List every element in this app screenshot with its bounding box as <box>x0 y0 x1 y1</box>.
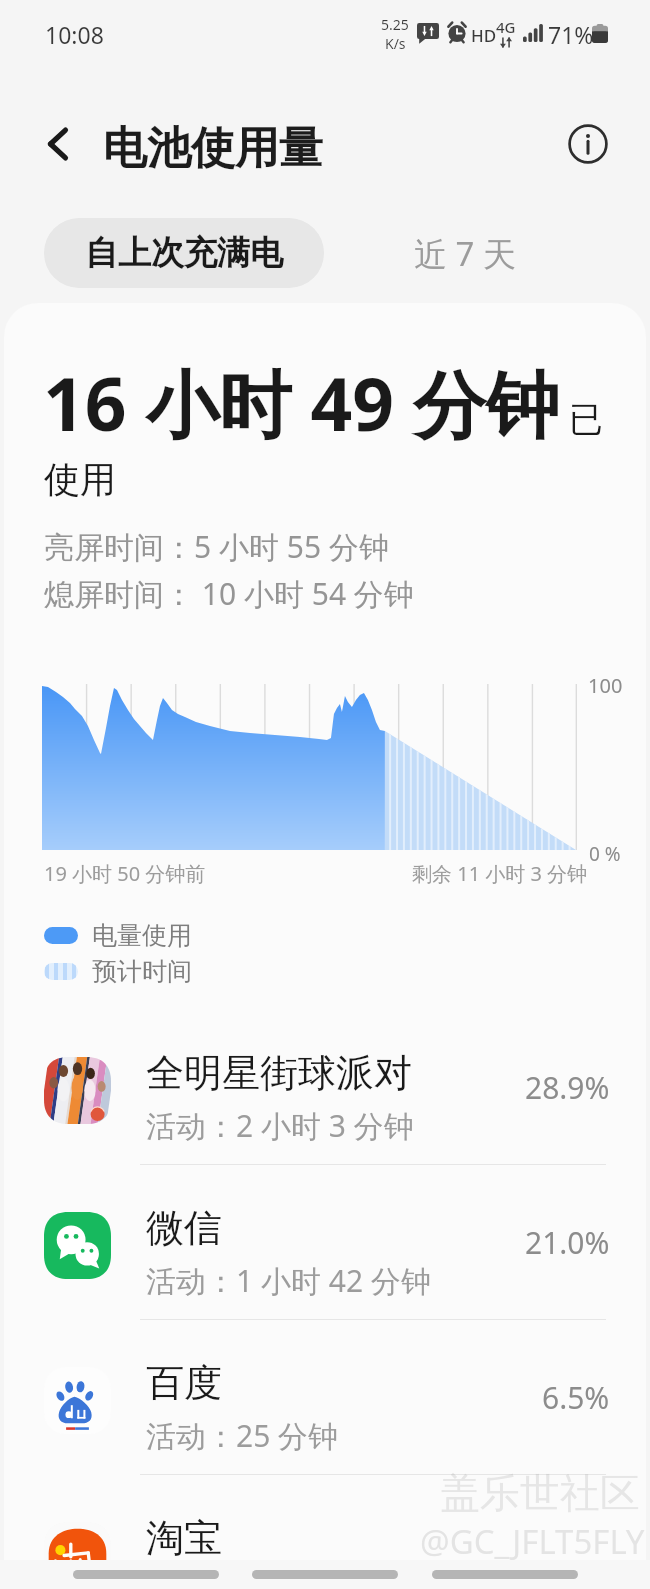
staticText: 活动：25 分钟 <box>146 1415 339 1456</box>
staticText: 10:08 <box>45 19 104 50</box>
button[interactable]: 近 7 天 <box>380 218 550 288</box>
staticText: 已 <box>569 398 603 441</box>
staticText: 近 7 天 <box>414 231 517 276</box>
staticText: 剩余 11 小时 3 分钟 <box>412 860 588 887</box>
staticText: 电池使用量 <box>103 121 323 176</box>
staticText: 淘宝 <box>146 1514 222 1562</box>
staticText: 预计时间 <box>92 956 192 987</box>
staticText: 5.25 <box>381 15 409 34</box>
button[interactable]: Information <box>558 114 618 174</box>
staticText: 百度 <box>146 1359 222 1407</box>
staticText: 21.0% <box>525 1222 610 1263</box>
button[interactable]: 微信 <box>4 1165 646 1320</box>
staticText: K/s <box>385 34 406 53</box>
staticText: HD <box>471 24 497 47</box>
button[interactable]: Back <box>26 112 90 176</box>
button[interactable]: Home <box>252 1570 398 1579</box>
staticText: 19 小时 50 分钟前 <box>44 860 206 887</box>
staticText: 0 % <box>589 841 621 867</box>
button[interactable]: Back <box>432 1570 578 1579</box>
staticText: 自上次充满电 <box>85 232 283 274</box>
staticText: 微信 <box>146 1204 222 1252</box>
button[interactable]: 自上次充满电 <box>44 218 324 288</box>
button[interactable]: 全明星街球派对 <box>4 1010 646 1165</box>
staticText: 16 小时 49 分钟 <box>43 353 559 453</box>
staticText: 71% <box>548 19 594 50</box>
staticText: @GC_JFLT5FLY <box>420 1519 645 1564</box>
staticText: 亮屏时间：5 小时 55 分钟 <box>44 526 389 567</box>
staticText: 使用 <box>44 457 116 502</box>
staticText: 100 <box>588 672 623 699</box>
staticText: 电量使用 <box>92 920 192 951</box>
button[interactable]: Recents <box>73 1570 219 1579</box>
button[interactable]: 百度 <box>4 1320 646 1475</box>
staticText: 活动：2 小时 3 分钟 <box>146 1105 414 1146</box>
staticText: 4G <box>496 17 516 37</box>
staticText: 28.9% <box>525 1067 610 1108</box>
staticText: 全明星街球派对 <box>146 1049 412 1097</box>
staticText: 6.5% <box>542 1377 610 1418</box>
staticText: 熄屏时间： 10 小时 54 分钟 <box>44 573 414 614</box>
staticText: 活动：1 小时 42 分钟 <box>146 1260 431 1301</box>
button[interactable]: 淘宝 <box>4 1475 646 1589</box>
staticText: 盖乐世社区 <box>440 1468 640 1518</box>
